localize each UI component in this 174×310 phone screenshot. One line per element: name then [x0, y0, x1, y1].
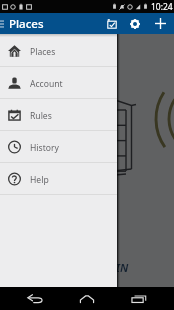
button[interactable]: History — [0, 131, 117, 162]
staticText: Places — [9, 16, 44, 32]
button[interactable]: Settings — [122, 13, 147, 34]
button[interactable]: Account — [0, 67, 117, 98]
button[interactable]: Rules — [0, 99, 117, 130]
button[interactable]: Home — [70, 287, 104, 310]
button[interactable]: Add place — [101, 13, 122, 34]
staticText: Account — [30, 78, 63, 90]
staticText: Help — [30, 174, 49, 186]
button[interactable]: Recent apps — [122, 287, 156, 310]
staticText: 10:24 — [151, 1, 173, 13]
button[interactable]: Add — [147, 13, 174, 34]
staticText: Places — [30, 46, 56, 58]
button[interactable]: Back — [18, 287, 52, 310]
staticText: Rules — [30, 110, 52, 122]
button[interactable]: Open navigation drawer — [0, 13, 5, 34]
staticText: WIN — [106, 260, 129, 275]
button[interactable]: Help — [0, 163, 117, 194]
staticText: History — [30, 142, 59, 154]
button[interactable]: Places — [0, 35, 117, 66]
